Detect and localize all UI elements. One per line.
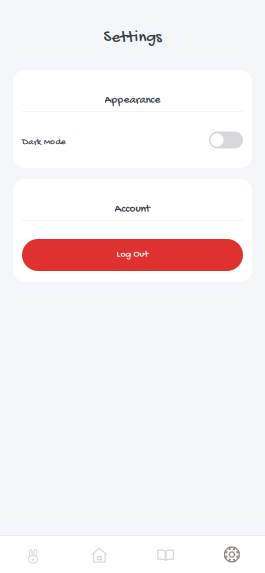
staticText: Dark Mode: [22, 137, 66, 148]
staticText: Log Out: [116, 249, 148, 261]
button[interactable]: Library: [132, 536, 199, 573]
staticText: Account: [114, 203, 150, 216]
button[interactable]: Settings: [199, 536, 265, 573]
staticText: Appearance: [104, 94, 160, 107]
staticText: Settings: [103, 28, 161, 48]
button[interactable]: Home: [66, 536, 132, 573]
button[interactable]: Dark Mode: [13, 112, 252, 168]
button[interactable]: Pets: [0, 536, 66, 573]
button[interactable]: Log Out: [22, 239, 243, 271]
